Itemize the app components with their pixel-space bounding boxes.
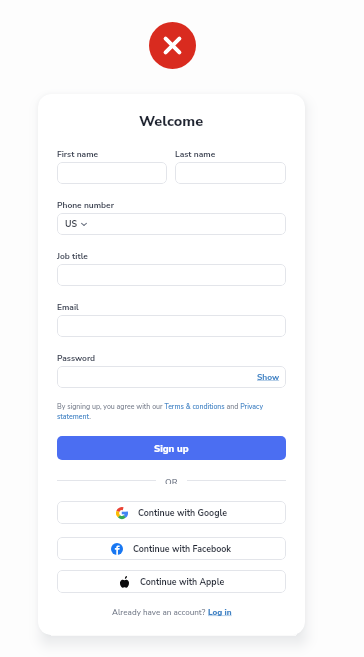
- staticText: By signing up, you agree with our Terms …: [57, 402, 286, 422]
- button[interactable]: US: [57, 213, 286, 235]
- button[interactable]: [57, 264, 286, 286]
- button[interactable]: Sign up: [57, 436, 286, 460]
- button[interactable]: [175, 162, 286, 184]
- staticText: Continue with Google: [138, 507, 227, 519]
- button[interactable]: Continue with Facebook: [57, 537, 286, 560]
- button[interactable]: [57, 315, 286, 337]
- staticText: Email: [57, 302, 79, 313]
- staticText: Continue with Apple: [140, 576, 225, 588]
- staticText: Welcome: [139, 111, 204, 127]
- button[interactable]: Close: [149, 22, 196, 69]
- staticText: Password: [57, 353, 96, 364]
- button[interactable]: Continue with Apple: [57, 570, 286, 593]
- button[interactable]: Show: [57, 366, 286, 388]
- staticText: Job title: [57, 251, 88, 262]
- staticText: Phone number: [57, 200, 114, 211]
- staticText: Log in: [208, 607, 232, 618]
- staticText: Already have an account?: [112, 607, 208, 618]
- button[interactable]: Show: [257, 372, 280, 383]
- staticText: Last name: [175, 149, 216, 160]
- staticText: US: [65, 218, 78, 230]
- button[interactable]: [57, 162, 167, 184]
- button[interactable]: Continue with Google: [57, 501, 286, 524]
- staticText: First name: [57, 149, 99, 160]
- button[interactable]: Already have an account?: [112, 607, 232, 618]
- staticText: OR: [165, 476, 178, 484]
- staticText: Continue with Facebook: [133, 543, 232, 555]
- staticText: Sign up: [154, 442, 189, 455]
